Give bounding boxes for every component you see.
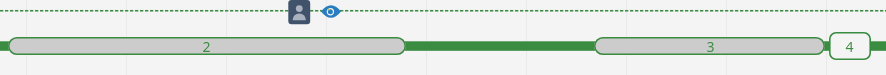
button[interactable]: Step 4	[829, 32, 871, 60]
button[interactable]: Watch	[321, 5, 341, 19]
button[interactable]: Step 3	[594, 37, 825, 55]
button[interactable]: Assignee	[288, 0, 310, 24]
button[interactable]: Step 2	[8, 37, 406, 55]
